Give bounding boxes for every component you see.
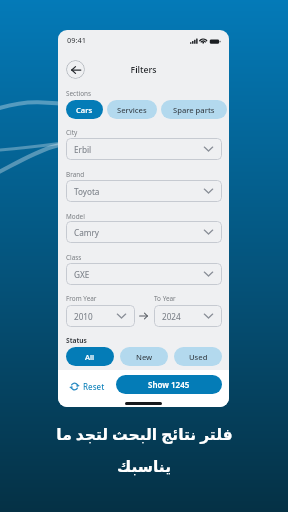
button[interactable]: Toyota xyxy=(66,180,222,202)
staticText: 2010 xyxy=(74,311,93,322)
staticText: Filters xyxy=(58,64,229,76)
staticText: فلتر نتائج البحث لتجد ما xyxy=(56,423,233,444)
staticText: Erbil xyxy=(74,144,92,155)
button[interactable]: Reset xyxy=(68,379,107,394)
staticText: From Year xyxy=(66,294,97,303)
staticText: 2024 xyxy=(162,311,181,322)
staticText: يناسبك xyxy=(117,458,171,476)
button[interactable]: GXE xyxy=(66,263,222,285)
staticText: All xyxy=(85,352,95,362)
staticText: To Year xyxy=(154,294,176,303)
staticText: Sections xyxy=(66,89,92,98)
button[interactable]: Services xyxy=(107,100,157,119)
button[interactable]: Erbil xyxy=(66,138,222,160)
button[interactable]: Back xyxy=(66,60,85,79)
staticText: Brand xyxy=(66,170,85,179)
staticText: Model xyxy=(66,212,85,221)
staticText: 09:41 xyxy=(67,35,86,45)
staticText: Reset xyxy=(83,381,105,392)
button[interactable]: 2010 xyxy=(66,305,135,327)
button[interactable]: Spare parts xyxy=(161,100,227,119)
staticText: Toyota xyxy=(74,186,100,197)
staticText: Show 1245 xyxy=(148,379,190,390)
staticText: Status xyxy=(66,336,87,345)
button[interactable]: New xyxy=(120,347,168,366)
button[interactable]: All xyxy=(66,347,114,366)
staticText: Used xyxy=(189,352,208,362)
button[interactable]: Used xyxy=(174,347,222,366)
staticText: Spare parts xyxy=(173,105,215,115)
staticText: City xyxy=(66,128,78,137)
staticText: Camry xyxy=(74,227,99,238)
button[interactable]: 2024 xyxy=(154,305,222,327)
button[interactable]: Cars xyxy=(66,100,103,119)
staticText: Class xyxy=(66,253,82,262)
button[interactable]: Camry xyxy=(66,221,222,243)
staticText: New xyxy=(136,352,153,362)
staticText: GXE xyxy=(74,269,90,280)
staticText: Services xyxy=(117,105,147,115)
button[interactable]: Show 1245 xyxy=(116,375,222,394)
staticText: Cars xyxy=(76,105,93,115)
